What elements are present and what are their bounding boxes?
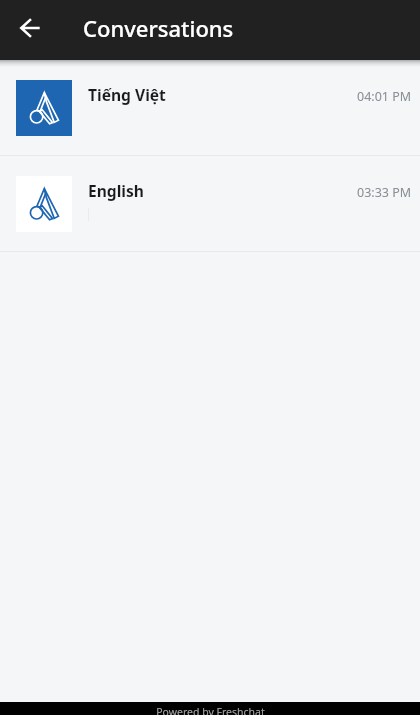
staticText: 03:33 PM bbox=[357, 184, 412, 201]
staticText: English bbox=[88, 180, 144, 201]
button[interactable]: English bbox=[0, 156, 420, 251]
staticText: Tiếng Việt bbox=[88, 84, 166, 105]
button[interactable]: Back bbox=[0, 0, 60, 60]
staticText: Conversations bbox=[83, 13, 234, 43]
staticText: Powered by Freshchat bbox=[156, 705, 265, 715]
staticText: 04:01 PM bbox=[357, 88, 412, 105]
button[interactable]: Tiếng Việt bbox=[0, 60, 420, 155]
